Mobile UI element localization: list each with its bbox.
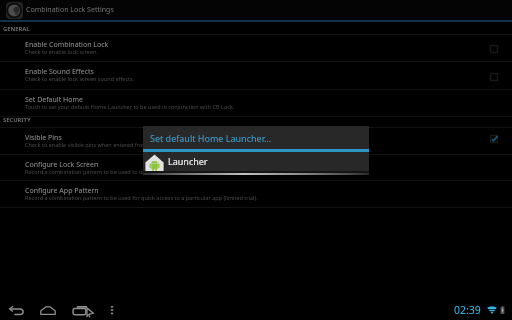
staticText: Enable Sound Effects (25, 67, 94, 77)
staticText: Enable Combination Lock (25, 40, 109, 50)
staticText: GENERAL (3, 25, 30, 33)
staticText: SECURITY (3, 116, 31, 124)
button[interactable]: Set Default Home (0, 90, 512, 116)
staticText: 02:39 (454, 303, 481, 317)
button[interactable]: Configure Lock Screen (0, 155, 512, 180)
staticText: Record a combination pattern to be used … (25, 194, 258, 201)
button[interactable]: Back (9, 306, 24, 315)
staticText: Set Default Home (25, 95, 83, 105)
staticText: Check to enable lock screen sound effect… (25, 75, 135, 82)
button[interactable]: Configure App Pattern (0, 181, 512, 207)
staticText: Set default Home Launcher... (150, 132, 272, 144)
staticText: Configure Lock Screen (25, 160, 99, 170)
staticText: Check to enable lock screen. (25, 48, 98, 55)
staticText: Launcher (168, 155, 208, 167)
button[interactable]: Recent apps (72, 306, 94, 317)
staticText: Touch to set your default Home Launcher … (25, 103, 235, 110)
button[interactable]: More options (108, 306, 117, 315)
button[interactable]: Enable Combination Lock (0, 35, 512, 61)
staticText: Configure App Pattern (25, 186, 99, 196)
staticText: Record a combination pattern to be used … (25, 168, 198, 175)
button[interactable]: Visible Pins (0, 128, 512, 154)
staticText: Check to enable visible pins when entere… (25, 141, 180, 148)
staticText: Visible Pins (25, 133, 62, 143)
button[interactable]: Enable Sound Effects (0, 62, 512, 89)
button[interactable]: Launcher (143, 152, 369, 175)
staticText: Combination Lock Settings (26, 5, 114, 15)
button[interactable]: Home (40, 306, 56, 315)
